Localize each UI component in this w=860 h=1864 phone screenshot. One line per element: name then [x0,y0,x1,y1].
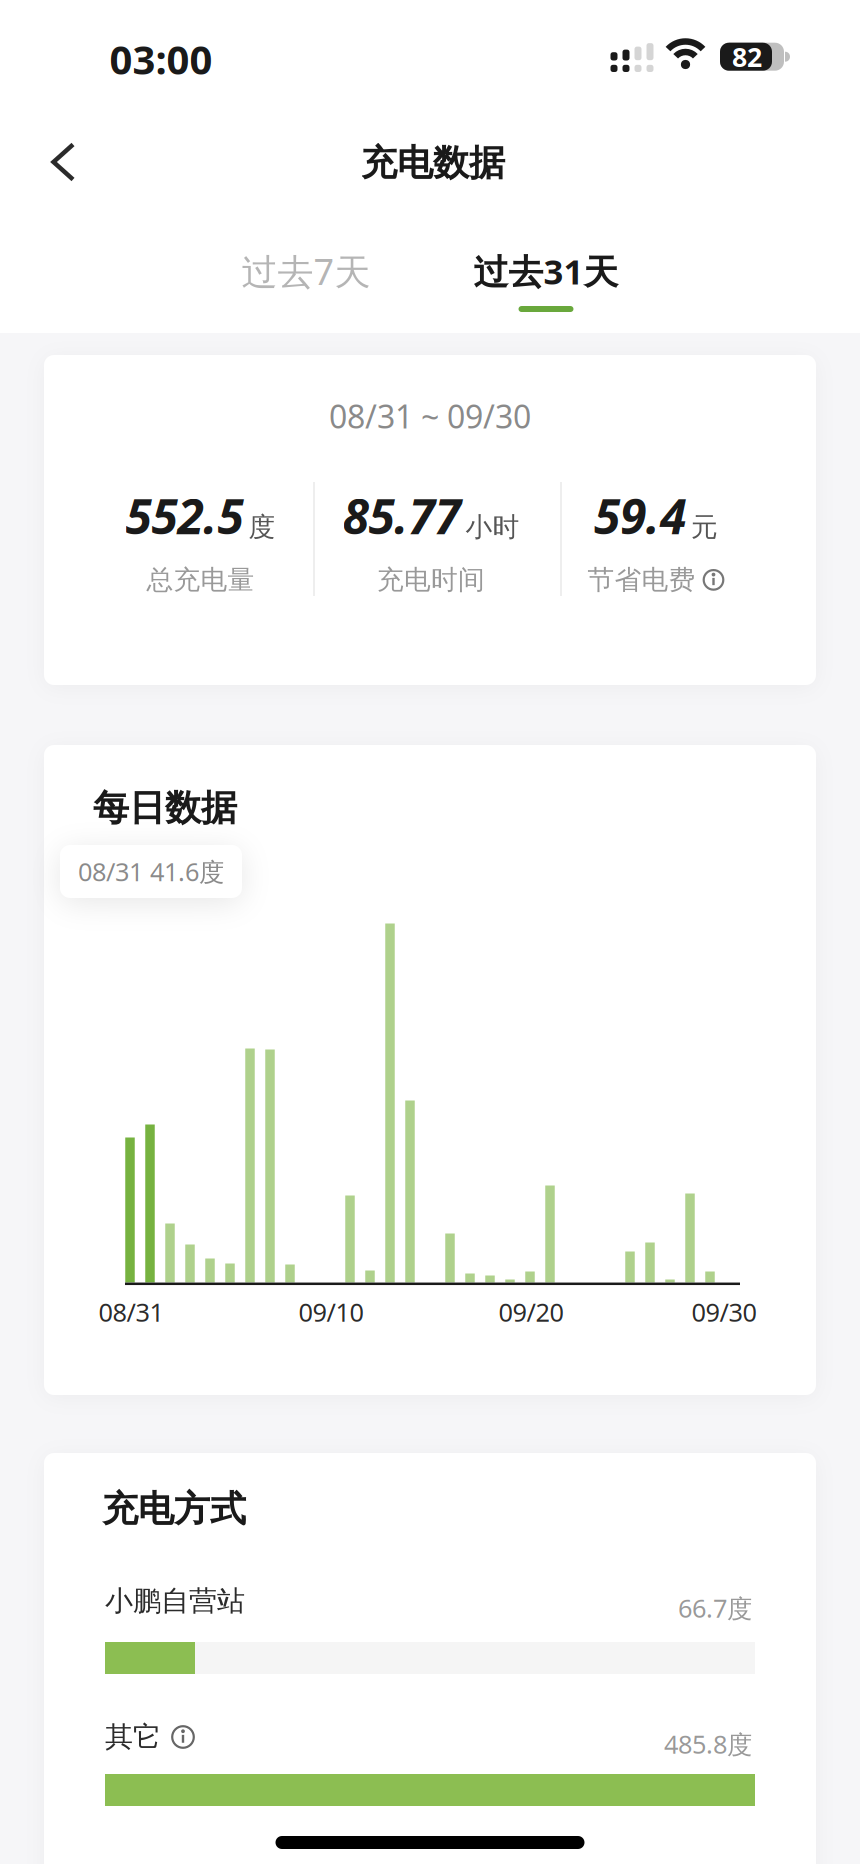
staticText: 其它 [105,1720,161,1754]
staticText: 08/31 [98,1295,163,1329]
staticText: 过去7天 [241,247,370,295]
staticText: 85.77 [342,484,460,547]
staticText: 充电方式 [102,1487,246,1531]
staticText: 过去31天 [473,248,618,294]
staticText: 09/20 [498,1295,563,1329]
button[interactable]: Back [42,140,86,184]
staticText: 03:00 [109,32,212,85]
staticText: 08/31 ~ 09/30 [329,395,531,437]
staticText: 小时 [465,511,519,543]
staticText: 59.4 [594,484,686,547]
staticText: 小鹏自营站 [105,1584,245,1618]
staticText: 总充电量 [146,563,254,596]
staticText: 82 [732,39,762,74]
staticText: 度 [248,511,275,543]
button[interactable]: 过去31天 [473,248,618,312]
staticText: 552.5 [125,484,243,547]
staticText: 08/31 41.6度 [78,855,224,888]
staticText: 09/10 [298,1295,363,1329]
button[interactable]: 其它说明 [171,1725,195,1749]
staticText: 485.8度 [664,1727,752,1761]
staticText: 充电时间 [377,563,485,596]
button[interactable]: 过去7天 [211,239,401,303]
staticText: 09/30 [691,1295,756,1329]
button[interactable]: 节省电费说明 [702,569,724,591]
staticText: 元 [691,511,718,543]
staticText: 节省电费 [587,563,695,596]
staticText: 每日数据 [93,786,237,830]
staticText: 66.7度 [678,1591,752,1625]
staticText: 充电数据 [361,141,505,185]
